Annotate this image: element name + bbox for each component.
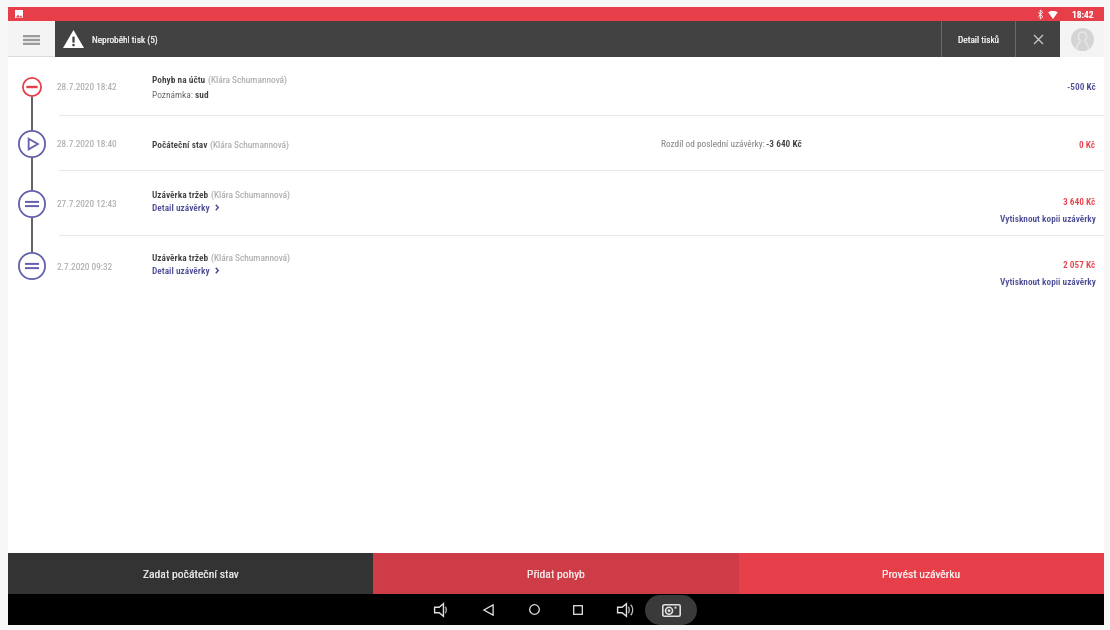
button[interactable]: Přidat pohyb — [373, 553, 739, 594]
button[interactable]: Vytisknout kopii uzávěrky — [1000, 274, 1096, 289]
button[interactable]: Close — [1016, 21, 1060, 57]
staticText: 0 Kč — [1079, 139, 1096, 150]
staticText: Provést uzávěrku — [882, 567, 961, 581]
button[interactable]: Detail uzávěrky — [152, 265, 219, 276]
button[interactable]: Zadat počáteční stav — [8, 553, 373, 594]
staticText: (Klára Schumannová) — [208, 74, 288, 85]
button[interactable]: Detail uzávěrky — [152, 202, 219, 213]
staticText: 18:42 — [1072, 9, 1094, 20]
staticText: Zadat počáteční stav — [143, 567, 239, 581]
staticText: -3 640 Kč — [766, 138, 802, 149]
button[interactable]: Provést uzávěrku — [739, 553, 1104, 594]
staticText: 28.7.2020 18:42 — [57, 81, 117, 92]
staticText: (Klára Schumannová) — [211, 252, 291, 263]
staticText: sud — [195, 89, 209, 100]
button[interactable]: 28.7.2020 18:42 — [8, 57, 1104, 116]
button[interactable]: Recents — [567, 594, 589, 625]
staticText: Pohyb na účtu — [152, 74, 206, 85]
staticText: 2 057 Kč — [1063, 259, 1096, 270]
button[interactable]: Account — [1060, 21, 1104, 57]
button[interactable]: Vytisknout kopii uzávěrky — [1000, 211, 1096, 226]
staticText: Poznámka: — [152, 89, 196, 100]
staticText: Počáteční stav — [152, 139, 208, 150]
button[interactable]: Detail tisků — [942, 21, 1015, 57]
staticText: (Klára Schumannová) — [210, 139, 290, 150]
staticText: Detail tisků — [958, 34, 1000, 45]
button[interactable]: 2.7.2020 09:32 — [8, 236, 1104, 296]
button[interactable]: Volume down — [430, 594, 452, 625]
staticText: Detail uzávěrky — [152, 265, 210, 276]
staticText: Detail uzávěrky — [152, 202, 210, 213]
staticText: 2.7.2020 09:32 — [57, 261, 113, 272]
staticText: Neproběhl tisk (5) — [92, 34, 158, 45]
button[interactable]: Back — [477, 594, 499, 625]
button[interactable]: Screenshot — [645, 595, 697, 625]
staticText: -500 Kč — [1067, 81, 1096, 92]
staticText: Uzávěrka tržeb — [152, 189, 209, 200]
button[interactable]: 28.7.2020 18:40 — [8, 116, 1104, 171]
button[interactable]: Menu — [8, 21, 55, 57]
staticText: Uzávěrka tržeb — [152, 252, 209, 263]
staticText: (Klára Schumannová) — [211, 189, 291, 200]
button[interactable]: Home — [523, 594, 545, 625]
button[interactable]: Volume up — [613, 594, 635, 625]
staticText: 27.7.2020 12:43 — [57, 198, 117, 209]
staticText: 28.7.2020 18:40 — [57, 138, 117, 149]
button[interactable]: 27.7.2020 12:43 — [8, 171, 1104, 236]
staticText: Přidat pohyb — [527, 567, 585, 581]
staticText: 3 640 Kč — [1063, 196, 1096, 207]
staticText: Rozdíl od poslední uzávěrky: — [661, 138, 767, 149]
staticText: Vytisknout kopii uzávěrky — [1000, 276, 1096, 287]
staticText: Vytisknout kopii uzávěrky — [1000, 213, 1096, 224]
